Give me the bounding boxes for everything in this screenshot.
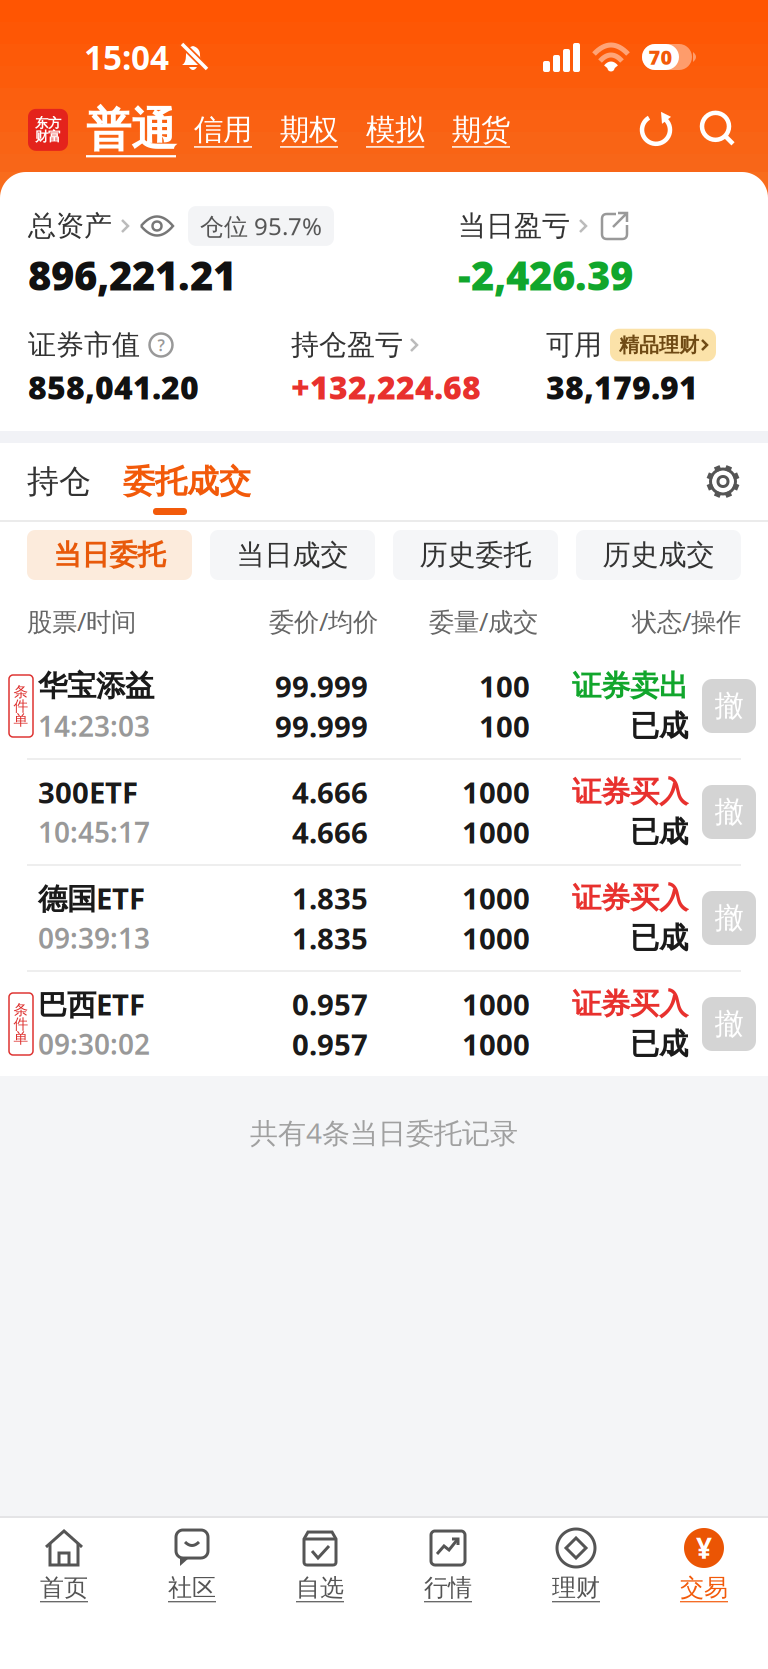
staticText: 858,041.20	[28, 366, 199, 408]
staticText: -2,426.39	[458, 248, 633, 301]
staticText: 0.957	[292, 984, 368, 1023]
button[interactable]: 自选	[256, 1528, 384, 1602]
staticText: 4.666	[292, 812, 368, 851]
staticText: 38,179.91	[546, 366, 698, 408]
staticText: 99.999	[275, 666, 368, 705]
staticText: ¥	[696, 1529, 712, 1567]
staticText: 100	[479, 666, 530, 705]
staticText: 证券市值	[28, 328, 140, 362]
staticText: 持仓盈亏	[291, 328, 403, 362]
staticText: 持仓	[27, 462, 91, 501]
staticText: 巴西ETF	[38, 984, 145, 1023]
staticText: 财富	[35, 128, 61, 145]
staticText: 精品理财	[619, 333, 699, 357]
staticText: 共有4条当日委托记录	[250, 1114, 518, 1151]
staticText: 撤	[714, 688, 743, 724]
staticText: 70	[648, 44, 672, 70]
staticText: 交易	[680, 1573, 728, 1602]
staticText: 证券卖出	[572, 668, 688, 704]
button[interactable]: 模拟	[366, 112, 424, 148]
button[interactable]: 总资产	[28, 209, 174, 243]
button[interactable]: 撤	[702, 891, 756, 945]
staticText: 理财	[552, 1573, 600, 1602]
button[interactable]: 历史成交	[576, 530, 741, 580]
staticText: 99.999	[275, 706, 368, 745]
button[interactable]: 当日委托	[27, 530, 192, 580]
staticText: 委托成交	[123, 462, 251, 501]
staticText: 件	[13, 1015, 28, 1033]
staticText: 单	[13, 711, 28, 729]
staticText: 社区	[168, 1573, 216, 1602]
button[interactable]: 理财	[512, 1528, 640, 1602]
staticText: 单	[13, 1029, 28, 1047]
button[interactable]: ¥	[640, 1528, 768, 1602]
staticText: 证券买入	[572, 774, 688, 810]
button[interactable]	[674, 111, 736, 149]
staticText: 1.835	[292, 878, 368, 917]
staticText: 普通	[86, 102, 176, 158]
staticText: 已成	[630, 814, 688, 850]
staticText: 1000	[462, 878, 530, 917]
staticText: 0.957	[292, 1024, 368, 1063]
staticText: 条	[13, 1001, 28, 1019]
staticText: 信用	[194, 112, 252, 148]
staticText: 件	[13, 697, 28, 715]
staticText: 896,221.21	[28, 248, 236, 301]
staticText: 德国ETF	[38, 878, 145, 917]
staticText: 条	[13, 683, 28, 701]
staticText: 当日成交	[236, 538, 348, 572]
staticText: 撤	[714, 1006, 743, 1042]
staticText: 东方	[35, 115, 61, 131]
button[interactable]	[704, 462, 742, 500]
staticText: 证券买入	[572, 880, 688, 916]
button[interactable]: 当日成交	[210, 530, 375, 580]
staticText: 委价/均价	[269, 604, 378, 638]
staticText: 1000	[462, 772, 530, 811]
staticText: +132,224.68	[291, 366, 481, 408]
button[interactable]: 委托成交	[123, 462, 251, 501]
staticText: 已成	[630, 708, 688, 744]
button[interactable]: 信用	[194, 112, 252, 148]
button[interactable]: 当日盈亏	[458, 209, 630, 243]
button[interactable]: 行情	[384, 1528, 512, 1602]
staticText: 行情	[424, 1573, 472, 1602]
staticText: 证券买入	[572, 986, 688, 1022]
button[interactable]: 精品理财	[610, 329, 716, 361]
staticText: 14:23:03	[38, 707, 150, 745]
button[interactable]: 首页	[0, 1528, 128, 1602]
button[interactable]: 期权	[280, 112, 338, 148]
staticText: 期货	[452, 112, 510, 148]
button[interactable]: 撤	[702, 679, 756, 733]
staticText: 已成	[630, 920, 688, 956]
staticText: 股票/时间	[27, 604, 136, 638]
staticText: 仓位 95.7%	[200, 210, 322, 242]
button[interactable]: 撤	[702, 997, 756, 1051]
button[interactable]: 持仓	[27, 462, 91, 501]
staticText: 1000	[462, 918, 530, 957]
button[interactable]	[638, 111, 674, 149]
staticText: 10:45:17	[38, 813, 150, 851]
staticText: 1000	[462, 812, 530, 851]
staticText: ?	[157, 334, 164, 356]
staticText: 撤	[714, 794, 743, 830]
button[interactable]: 撤	[702, 785, 756, 839]
staticText: 状态/操作	[632, 604, 741, 638]
staticText: 华宝添益	[38, 668, 154, 704]
button[interactable]: 期货	[452, 112, 510, 148]
button[interactable]: 历史委托	[393, 530, 558, 580]
staticText: 当日委托	[53, 538, 165, 572]
staticText: 总资产	[28, 209, 112, 243]
staticText: 当日盈亏	[458, 209, 570, 243]
staticText: 期权	[280, 112, 338, 148]
staticText: 自选	[296, 1573, 344, 1602]
staticText: 1000	[462, 984, 530, 1023]
button[interactable]: 普通	[86, 102, 176, 158]
staticText: 4.666	[292, 772, 368, 811]
staticText: 历史成交	[602, 538, 714, 572]
staticText: 1000	[462, 1024, 530, 1063]
button[interactable]: 社区	[128, 1528, 256, 1602]
staticText: 首页	[40, 1573, 88, 1602]
staticText: 撤	[714, 900, 743, 936]
staticText: 09:30:02	[38, 1025, 150, 1063]
staticText: 可用	[546, 328, 602, 362]
